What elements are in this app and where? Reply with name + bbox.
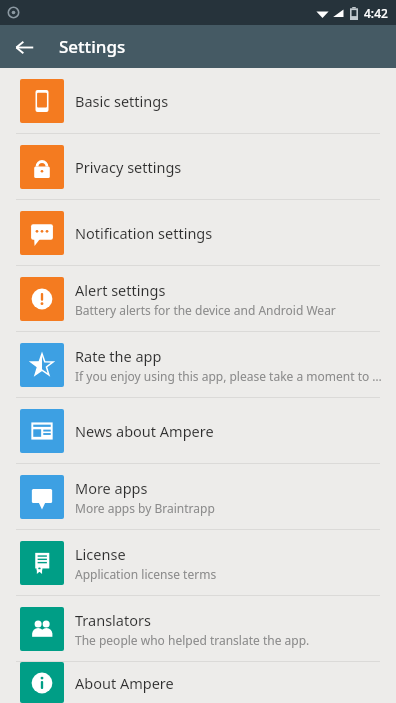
staticText: License — [75, 544, 126, 564]
button[interactable]: News about Ampere — [0, 398, 396, 463]
staticText: Application license terms — [75, 566, 217, 582]
staticText: About Ampere — [75, 673, 174, 693]
staticText: Alert settings — [75, 280, 166, 300]
button[interactable]: License — [0, 530, 396, 595]
staticText: Privacy settings — [75, 157, 182, 177]
button[interactable]: Alert settings — [0, 266, 396, 331]
staticText: The people who helped translate the app. — [75, 632, 310, 648]
staticText: Settings — [59, 35, 126, 58]
button[interactable]: About Ampere — [0, 662, 396, 703]
button[interactable]: Rate the app — [0, 332, 396, 397]
staticText: If you enjoy using this app, please take… — [75, 368, 382, 384]
staticText: Battery alerts for the device and Androi… — [75, 302, 336, 318]
staticText: More apps by Braintrapp — [75, 500, 215, 516]
button[interactable]: Notification settings — [0, 200, 396, 265]
button[interactable]: Privacy settings — [0, 134, 396, 199]
staticText: Translators — [75, 610, 151, 630]
staticText: Notification settings — [75, 223, 213, 243]
button[interactable]: Basic settings — [0, 68, 396, 133]
button[interactable]: Back — [7, 30, 41, 64]
button[interactable]: More apps — [0, 464, 396, 529]
staticText: Basic settings — [75, 91, 169, 111]
staticText: Rate the app — [75, 346, 162, 366]
staticText: 4:42 — [364, 5, 388, 21]
button[interactable]: Translators — [0, 596, 396, 661]
staticText: More apps — [75, 478, 148, 498]
staticText: News about Ampere — [75, 421, 214, 441]
